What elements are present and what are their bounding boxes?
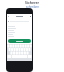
- button[interactable]: [8, 39, 31, 43]
- button[interactable]: [8, 20, 31, 22]
- button[interactable]: Keyboard: [7, 44, 32, 61]
- staticText: Sicherer: [25, 0, 39, 5]
- staticText: schreiben: [26, 5, 39, 9]
